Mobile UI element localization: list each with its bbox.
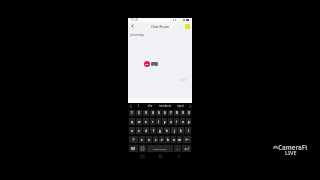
staticText: e [145,120,147,124]
button[interactable]: c [153,136,158,143]
button[interactable]: English (US) [147,145,173,152]
staticText: Read [180,78,187,82]
button[interactable]: More suggestions [187,103,192,109]
button[interactable]: input [174,103,187,109]
staticText: I [138,104,139,108]
staticText: r [152,120,154,124]
staticText: h [166,129,168,133]
button[interactable]: f [150,127,156,134]
staticText: d [145,129,147,133]
button[interactable]: 4 [150,110,155,116]
staticText: input [177,104,184,108]
staticText: g [159,129,161,133]
button[interactable]: d [143,127,149,134]
staticText: hi [153,63,156,66]
staticText: 7 [170,111,172,115]
button[interactable]: l [185,127,191,134]
staticText: English (US) [153,147,167,150]
button[interactable]: s [136,127,142,134]
button[interactable]: 7 [168,110,173,116]
staticText: l [188,129,189,133]
button[interactable]: Home [155,153,165,159]
button[interactable]: Backspace [183,136,191,143]
staticText: k [180,129,182,133]
button[interactable]: e [143,118,149,125]
button[interactable]: Shift [129,136,138,143]
button[interactable]: n [171,136,176,143]
staticText: s [138,129,140,133]
staticText: 6 [164,111,166,115]
button[interactable]: 5 [156,110,161,116]
staticText: c [155,138,157,142]
button[interactable]: i [174,118,179,125]
button[interactable]: I [133,103,144,109]
staticText: 9 [182,111,184,115]
staticText: z [141,138,143,142]
staticText: Chat Room [151,24,169,29]
button[interactable]: the [144,103,156,109]
button[interactable]: r [150,118,155,125]
staticText: . [177,147,178,151]
button[interactable]: z [139,136,145,143]
staticText: yesterday [130,33,145,37]
staticText: LIVE [285,149,297,156]
button[interactable]: h [164,127,170,134]
staticText: v [161,138,163,142]
button[interactable]: Recents [137,153,147,159]
staticText: 10:49 [131,18,139,22]
button[interactable]: u [168,118,173,125]
staticText: !#1 [131,147,136,151]
button[interactable]: Previous suggestions [128,103,133,109]
staticText: f [153,129,154,133]
button[interactable]: v [159,136,164,143]
staticText: 8 [176,111,178,115]
button[interactable]: q [129,118,135,125]
staticText: the [148,104,153,108]
button[interactable]: !#1 [129,145,138,152]
staticText: n [173,138,175,142]
staticText: x [148,138,150,142]
button[interactable]: Back [174,153,184,159]
staticText: t [158,120,160,124]
staticText: 2 [138,111,140,115]
button[interactable]: Enter [182,145,191,152]
staticText: w [138,120,141,124]
button[interactable]: a [129,127,135,134]
staticText: u [170,120,172,124]
staticText: Me [145,63,149,66]
button[interactable]: . [174,145,181,152]
staticText: 3 [145,111,147,115]
staticText: b [167,138,169,142]
button[interactable]: Members [185,24,190,29]
staticText: y [164,120,166,124]
staticText: j [174,129,175,133]
button[interactable]: 8 [174,110,179,116]
button[interactable]: 3 [143,110,149,116]
button[interactable]: Back [128,22,136,30]
button[interactable]: 0 [186,110,191,116]
button[interactable]: 6 [162,110,167,116]
button[interactable]: Emoji [139,145,146,152]
button[interactable]: m [177,136,182,143]
staticText: 1 [131,111,133,115]
button[interactable]: 9 [180,110,185,116]
button[interactable]: t [156,118,161,125]
button[interactable]: x [146,136,152,143]
button[interactable]: b [165,136,170,143]
button[interactable]: 1 [129,110,135,116]
button[interactable]: o [180,118,185,125]
button[interactable]: w [136,118,142,125]
button[interactable]: k [178,127,184,134]
staticText: m [178,138,181,142]
staticText: 4 [152,111,154,115]
staticText: 0 [188,111,190,115]
button[interactable]: j [171,127,177,134]
staticText: CameraFi [278,143,308,151]
button[interactable]: y [162,118,167,125]
button[interactable]: 2 [136,110,142,116]
button[interactable]: members [156,103,174,109]
button[interactable]: g [157,127,163,134]
staticText: 5 [158,111,160,115]
staticText: p [188,120,190,124]
button[interactable]: p [186,118,191,125]
